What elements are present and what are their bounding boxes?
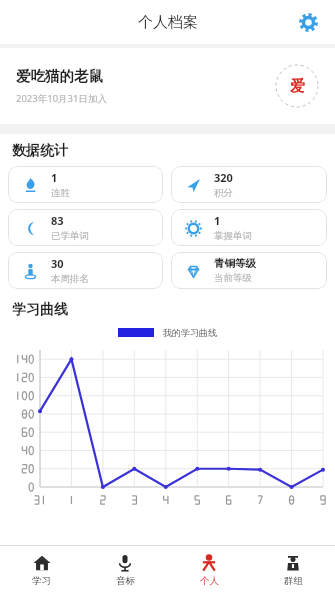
button[interactable]: 83 <box>8 209 163 246</box>
staticText: 320 <box>214 170 233 185</box>
staticText: 2023年10月31日加入 <box>16 92 107 105</box>
staticText: 83 <box>51 213 64 228</box>
staticText: 数据统计 <box>12 142 68 160</box>
button[interactable]: 爱吃猫的老鼠 <box>0 48 335 124</box>
staticText: 个人 <box>200 575 219 587</box>
button[interactable]: 音标 <box>83 546 167 595</box>
button[interactable]: 群组 <box>251 546 335 595</box>
staticText: 音标 <box>116 575 135 587</box>
button[interactable]: 个人 <box>167 546 251 595</box>
staticText: 个人档案 <box>138 13 198 32</box>
button[interactable]: 30 <box>8 252 163 289</box>
staticText: 爱吃猫的老鼠 <box>16 67 103 85</box>
staticText: 已学单词 <box>51 230 89 242</box>
staticText: 积分 <box>214 187 233 199</box>
staticText: 学习 <box>32 575 51 587</box>
button[interactable]: 1 <box>8 166 163 203</box>
staticText: 1 <box>214 213 221 228</box>
button[interactable]: 青铜等级 <box>171 252 327 289</box>
staticText: 1 <box>51 170 58 185</box>
button[interactable]: Settings <box>293 7 323 37</box>
staticText: 青铜等级 <box>214 257 256 270</box>
staticText: 掌握单词 <box>214 230 252 242</box>
button[interactable]: 320 <box>171 166 327 203</box>
staticText: 我的学习曲线 <box>163 327 217 338</box>
staticText: 当前等级 <box>214 272 252 284</box>
staticText: 本周排名 <box>51 273 89 285</box>
staticText: 群组 <box>284 575 303 587</box>
staticText: 爱 <box>290 77 305 96</box>
button[interactable]: 1 <box>171 209 327 246</box>
staticText: 学习曲线 <box>12 301 68 319</box>
button[interactable]: 学习 <box>0 546 83 595</box>
staticText: 30 <box>51 256 64 271</box>
staticText: 连胜 <box>51 187 70 199</box>
